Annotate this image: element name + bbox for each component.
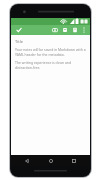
staticText: The writing experience is clean and dist…: [15, 60, 86, 70]
button[interactable]: Home: [44, 155, 58, 166]
button[interactable]: More options: [80, 25, 88, 35]
staticText: Title: [15, 39, 23, 44]
staticText: Your notes will be saved in Markdown wit…: [15, 47, 86, 57]
button[interactable]: Title: [11, 35, 90, 155]
button[interactable]: Back: [20, 155, 34, 166]
button[interactable]: Recent apps: [67, 155, 81, 166]
button[interactable]: Archive: [70, 25, 79, 35]
button[interactable]: Save note: [14, 25, 24, 35]
button[interactable]: Attach photo: [50, 25, 59, 35]
button[interactable]: Add reminder: [60, 25, 69, 35]
